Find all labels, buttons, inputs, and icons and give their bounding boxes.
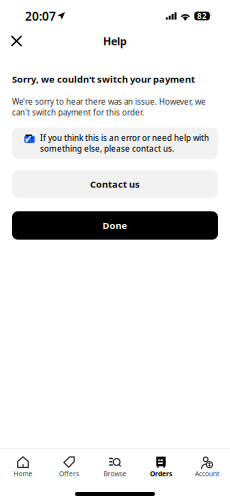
button[interactable]: Orders <box>138 449 184 500</box>
staticText: Done <box>102 219 127 232</box>
staticText: Home <box>13 469 32 478</box>
staticText: We're sorry to hear there was an issue. … <box>12 96 206 118</box>
button[interactable]: Offers <box>46 449 92 500</box>
staticText: Browse <box>103 469 126 478</box>
button[interactable]: Account <box>184 449 230 500</box>
button[interactable]: Close <box>0 29 35 52</box>
staticText: 82 <box>197 11 207 21</box>
staticText: Help <box>103 34 127 48</box>
button[interactable]: Browse <box>92 449 138 500</box>
staticText: Account <box>195 469 219 478</box>
button[interactable]: Home <box>0 449 46 500</box>
button[interactable]: Done <box>12 211 218 240</box>
staticText: Contact us <box>90 178 140 190</box>
staticText: Offers <box>59 469 79 478</box>
staticText: Sorry, we couldn't switch your payment <box>12 73 195 85</box>
staticText: Orders <box>150 469 172 478</box>
staticText: 20:07 <box>25 8 56 24</box>
staticText: If you think this is an error or need he… <box>40 133 209 154</box>
button[interactable]: Contact us <box>12 170 218 198</box>
